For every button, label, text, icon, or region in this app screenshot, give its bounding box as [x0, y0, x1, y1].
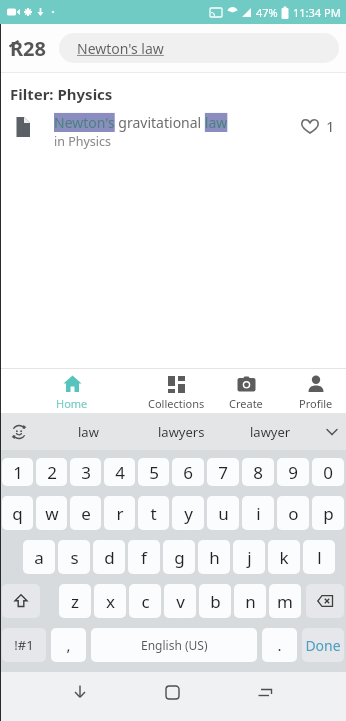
button[interactable]: x: [94, 584, 126, 618]
button[interactable]: 6: [172, 458, 204, 486]
staticText: t: [150, 502, 157, 525]
staticText: ,: [66, 635, 71, 655]
button[interactable]: [165, 685, 180, 700]
button[interactable]: 4: [104, 458, 135, 486]
staticText: 0: [323, 461, 333, 484]
button[interactable]: r: [104, 496, 135, 530]
button[interactable]: Collections: [136, 369, 216, 413]
staticText: l: [317, 546, 322, 569]
button[interactable]: [306, 584, 344, 618]
button[interactable]: 1: [2, 458, 33, 486]
button[interactable]: English (US): [91, 628, 257, 662]
button[interactable]: v: [164, 584, 196, 618]
staticText: o: [288, 502, 299, 525]
button[interactable]: lawyers: [146, 413, 216, 450]
button[interactable]: o: [277, 496, 309, 530]
staticText: law: [78, 423, 99, 441]
button[interactable]: u: [207, 496, 239, 530]
button[interactable]: [257, 685, 273, 701]
staticText: Newton's law: [77, 39, 164, 58]
button[interactable]: Home: [42, 369, 102, 413]
button[interactable]: 9: [277, 458, 309, 486]
button[interactable]: p: [312, 496, 344, 530]
button[interactable]: Done: [302, 628, 344, 662]
staticText: 8: [253, 461, 263, 484]
button[interactable]: t: [138, 496, 169, 530]
button[interactable]: Create: [216, 369, 276, 413]
button[interactable]: l: [303, 540, 335, 574]
staticText: lawyers: [158, 423, 205, 441]
staticText: d: [104, 546, 115, 569]
staticText: x: [106, 590, 115, 613]
button[interactable]: 3: [70, 458, 101, 486]
staticText: Home: [56, 396, 88, 411]
button[interactable]: law: [58, 413, 118, 450]
button[interactable]: lawyer: [240, 413, 300, 450]
button[interactable]: z: [59, 584, 91, 618]
staticText: z: [71, 590, 79, 613]
staticText: 6: [183, 461, 193, 484]
staticText: Done: [305, 636, 341, 655]
button[interactable]: 8: [242, 458, 274, 486]
staticText: c: [141, 590, 150, 613]
button[interactable]: a: [23, 540, 55, 574]
button[interactable]: 5: [138, 458, 169, 486]
staticText: 4: [115, 461, 125, 484]
button[interactable]: b: [199, 584, 231, 618]
button[interactable]: g: [163, 540, 195, 574]
staticText: p: [323, 502, 334, 525]
staticText: Profile: [299, 396, 333, 411]
staticText: lawyer: [250, 423, 291, 441]
button[interactable]: y: [172, 496, 204, 530]
staticText: y: [184, 502, 193, 525]
staticText: h: [209, 546, 220, 569]
button[interactable]: !#1: [2, 628, 46, 662]
staticText: n: [245, 590, 256, 613]
staticText: i: [256, 502, 261, 525]
button[interactable]: [2, 584, 40, 618]
staticText: .: [277, 635, 282, 655]
button[interactable]: j: [233, 540, 265, 574]
staticText: 5: [149, 461, 159, 484]
button[interactable]: d: [93, 540, 125, 574]
button[interactable]: 2: [36, 458, 67, 486]
staticText: v: [176, 590, 185, 613]
staticText: b: [210, 590, 221, 613]
button[interactable]: w: [36, 496, 67, 530]
button[interactable]: h: [198, 540, 230, 574]
button[interactable]: Profile: [286, 369, 346, 413]
staticText: f: [141, 546, 147, 569]
button[interactable]: e: [70, 496, 101, 530]
staticText: g: [174, 546, 185, 569]
staticText: !#1: [14, 636, 34, 654]
staticText: q: [12, 502, 23, 525]
staticText: 2: [47, 461, 57, 484]
staticText: 1: [326, 116, 335, 136]
staticText: 3: [81, 461, 91, 484]
button[interactable]: Newton's law: [59, 33, 339, 63]
button[interactable]: f: [128, 540, 160, 574]
button[interactable]: i: [242, 496, 274, 530]
staticText: 9: [288, 461, 298, 484]
button[interactable]: .: [262, 628, 297, 662]
button[interactable]: ,: [51, 628, 86, 662]
staticText: 11:34 PM: [293, 5, 341, 20]
button[interactable]: s: [58, 540, 90, 574]
button[interactable]: k: [268, 540, 300, 574]
button[interactable]: Newton's gravitational law: [15, 113, 335, 150]
button[interactable]: 0: [312, 458, 344, 486]
button[interactable]: [72, 684, 88, 700]
staticText: Filter: Physics: [10, 84, 113, 104]
button[interactable]: c: [129, 584, 161, 618]
staticText: Collections: [148, 396, 205, 411]
button[interactable]: n: [234, 584, 266, 618]
staticText: a: [34, 546, 44, 569]
staticText: 7: [218, 461, 228, 484]
staticText: m: [277, 590, 293, 613]
button[interactable]: m: [269, 584, 301, 618]
staticText: in Physics: [54, 133, 112, 150]
staticText: w: [45, 502, 59, 525]
staticText: u: [218, 502, 229, 525]
button[interactable]: 7: [207, 458, 239, 486]
button[interactable]: q: [2, 496, 33, 530]
